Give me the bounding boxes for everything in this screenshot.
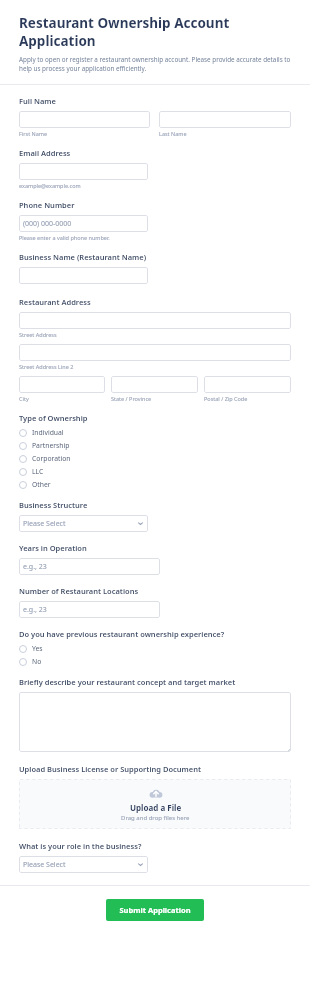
staticText: Yes [32, 644, 43, 653]
staticText: Please Select [23, 519, 66, 529]
staticText: Upload Business License or Supporting Do… [19, 764, 202, 774]
staticText: Number of Restaurant Locations [19, 586, 139, 596]
button[interactable] [19, 692, 291, 752]
staticText: Partnership [32, 441, 70, 450]
staticText: Apply to open or register a restaurant o… [19, 55, 291, 73]
staticText: Briefly describe your restaurant concept… [19, 677, 236, 687]
staticText: e.g., 23 [23, 605, 47, 615]
staticText: Individual [32, 428, 64, 437]
staticText: Other [32, 480, 51, 489]
button[interactable] [19, 267, 148, 284]
staticText: Please enter a valid phone number. [19, 234, 110, 241]
button[interactable]: Please Select [19, 515, 148, 532]
button[interactable] [159, 111, 291, 128]
staticText: Please Select [23, 860, 66, 870]
staticText: Email Address [19, 148, 71, 158]
button[interactable] [111, 376, 198, 393]
staticText: Last Name [159, 130, 187, 137]
button[interactable]: Yes [19, 642, 291, 655]
staticText: Street Address [19, 331, 57, 338]
staticText: (000) 000-0000 [23, 219, 72, 229]
button[interactable]: (000) 000-0000 [19, 215, 148, 232]
staticText: LLC [32, 467, 44, 476]
button[interactable]: Partnership [19, 439, 291, 452]
staticText: Phone Number [19, 200, 75, 210]
staticText: Do you have previous restaurant ownershi… [19, 629, 225, 639]
button[interactable] [204, 376, 291, 393]
staticText: example@example.com [19, 182, 81, 189]
button[interactable] [19, 376, 105, 393]
staticText: First Name [19, 130, 48, 137]
button[interactable]: No [19, 655, 291, 668]
button[interactable]: e.g., 23 [19, 601, 160, 618]
staticText: Full Name [19, 96, 56, 106]
button[interactable]: Corporation [19, 452, 291, 465]
staticText: Restaurant Ownership Account Application [19, 14, 230, 50]
staticText: Drag and drop files here [121, 814, 190, 822]
staticText: Street Address Line 2 [19, 363, 74, 370]
button[interactable]: Individual [19, 426, 291, 439]
staticText: e.g., 23 [23, 562, 47, 572]
button[interactable]: Please Select [19, 856, 148, 873]
staticText: Corporation [32, 454, 71, 463]
staticText: Postal / Zip Code [204, 395, 248, 402]
staticText: Business Name (Restaurant Name) [19, 252, 147, 262]
button[interactable]: Upload a File [19, 779, 291, 829]
staticText: No [32, 657, 42, 666]
staticText: Upload a File [130, 802, 182, 813]
button[interactable] [19, 111, 150, 128]
button[interactable]: Submit Application [106, 899, 204, 921]
staticText: What is your role in the business? [19, 841, 142, 851]
button[interactable] [19, 312, 291, 329]
staticText: Restaurant Address [19, 297, 91, 307]
button[interactable]: e.g., 23 [19, 558, 160, 575]
staticText: Business Structure [19, 500, 88, 510]
staticText: Type of Ownership [19, 413, 88, 423]
button[interactable] [19, 163, 148, 180]
staticText: Years in Operation [19, 543, 87, 553]
staticText: State / Province [111, 395, 152, 402]
staticText: City [19, 395, 29, 402]
button[interactable]: LLC [19, 465, 291, 478]
staticText: Submit Application [119, 905, 191, 915]
button[interactable]: Other [19, 478, 291, 491]
button[interactable] [19, 344, 291, 361]
